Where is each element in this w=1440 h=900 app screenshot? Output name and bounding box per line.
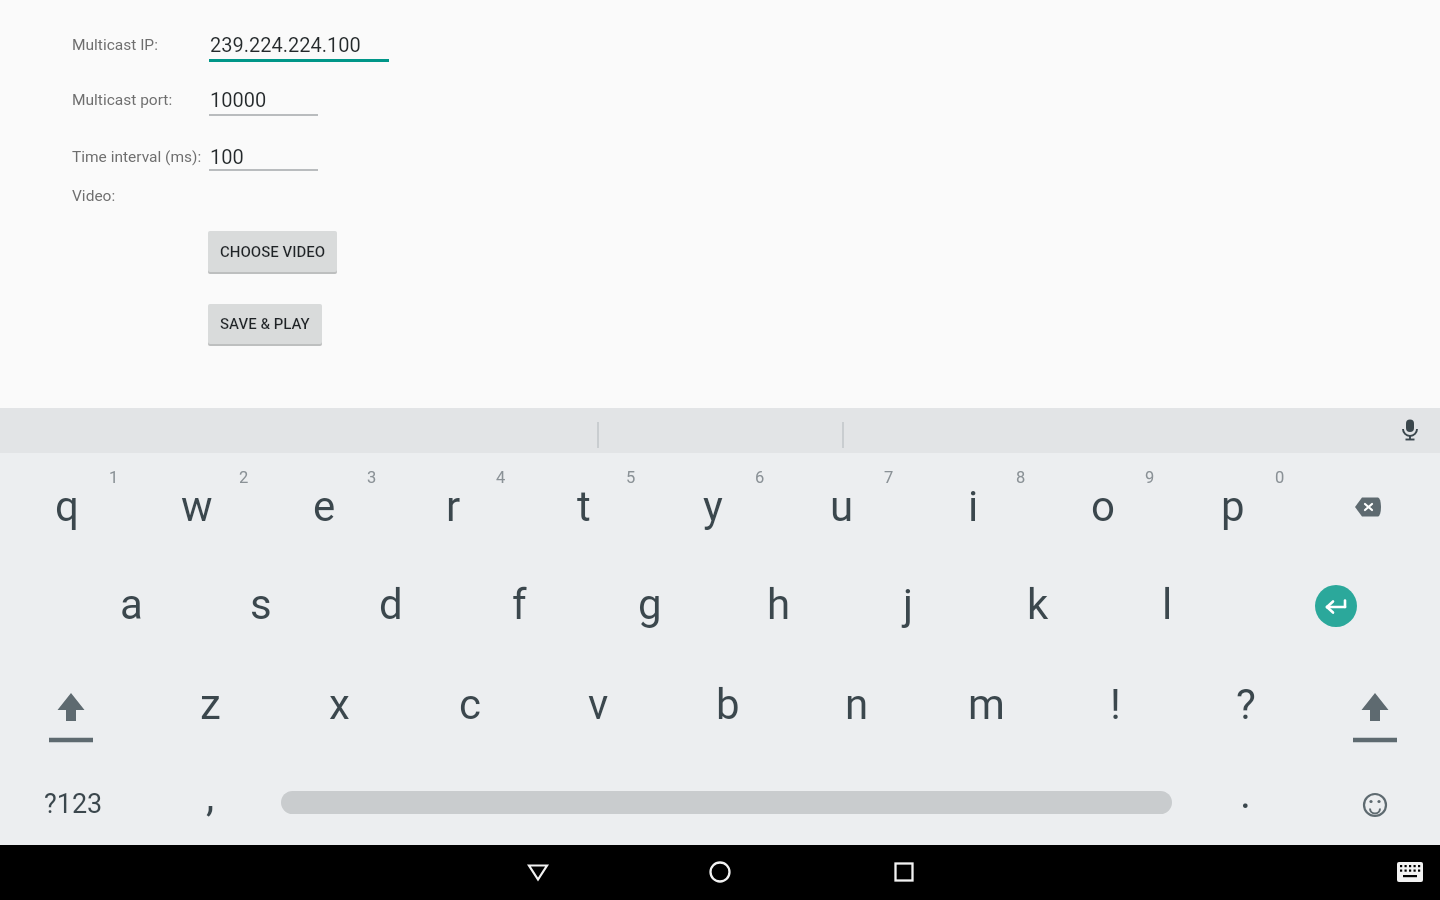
staticText: 8	[1016, 468, 1026, 487]
button[interactable]	[1308, 648, 1440, 746]
staticText: 3	[367, 468, 377, 487]
staticText: 100	[210, 145, 244, 168]
button[interactable]: CHOOSE VIDEO	[208, 231, 337, 272]
button[interactable]: k	[973, 549, 1102, 648]
staticText: CHOOSE VIDEO	[220, 243, 326, 261]
button[interactable]: j	[844, 549, 973, 648]
button[interactable]: d	[326, 549, 455, 648]
button[interactable]: i	[909, 453, 1038, 550]
staticText: ,	[206, 772, 215, 821]
button[interactable]: q	[2, 453, 131, 550]
staticText: 239.224.224.100	[210, 33, 361, 56]
staticText: n	[845, 680, 869, 729]
button[interactable]: l	[1103, 549, 1232, 648]
staticText: t	[577, 482, 591, 531]
button[interactable]: o	[1038, 453, 1167, 550]
staticText: 2	[239, 468, 249, 487]
button[interactable]	[4, 648, 138, 746]
button[interactable]: !	[1051, 648, 1180, 746]
staticText: a	[120, 580, 143, 629]
staticText: h	[767, 580, 791, 629]
button[interactable]: .	[1181, 746, 1310, 845]
staticText: m	[968, 680, 1005, 729]
button[interactable]	[1301, 453, 1435, 550]
button[interactable]	[1308, 746, 1440, 845]
staticText: e	[313, 482, 336, 531]
staticText: Time interval (ms):	[72, 148, 202, 166]
staticText: y	[703, 482, 723, 531]
button[interactable]: t	[519, 453, 648, 550]
button[interactable]: m	[922, 648, 1051, 746]
button[interactable]: h	[714, 549, 843, 648]
button[interactable]: ?	[1181, 648, 1310, 746]
button[interactable]: y	[648, 453, 777, 550]
button[interactable]	[209, 28, 389, 61]
staticText: 0	[1275, 468, 1285, 487]
staticText: k	[1027, 580, 1049, 629]
staticText: g	[638, 580, 662, 629]
button[interactable]: u	[777, 453, 906, 550]
button[interactable]: ,	[146, 746, 275, 845]
staticText: s	[250, 580, 272, 629]
button[interactable]: x	[275, 648, 404, 746]
staticText: Video:	[72, 187, 116, 205]
button[interactable]	[859, 845, 949, 900]
staticText: Multicast IP:	[72, 36, 158, 54]
staticText: 10000	[210, 88, 267, 111]
button[interactable]: s	[196, 549, 325, 648]
staticText: SAVE & PLAY	[220, 315, 310, 333]
staticText: z	[200, 680, 221, 729]
staticText: Multicast port:	[72, 91, 173, 109]
button[interactable]: r	[389, 453, 518, 550]
staticText: b	[716, 680, 740, 729]
staticText: l	[1162, 580, 1173, 629]
button[interactable]	[209, 84, 318, 114]
staticText: 6	[755, 468, 765, 487]
staticText: c	[459, 680, 481, 729]
staticText: x	[329, 680, 350, 729]
staticText: 1	[109, 468, 119, 487]
button[interactable]: p	[1168, 453, 1297, 550]
staticText: w	[181, 482, 213, 531]
button[interactable]: e	[260, 453, 389, 550]
staticText: q	[55, 482, 79, 531]
button[interactable]: b	[663, 648, 792, 746]
button[interactable]: z	[146, 648, 275, 746]
staticText: v	[588, 680, 609, 729]
button[interactable]: SAVE & PLAY	[208, 304, 322, 344]
button[interactable]: ?123	[3, 746, 143, 845]
staticText: !	[1110, 680, 1121, 729]
button[interactable]: w	[132, 453, 261, 550]
button[interactable]	[1386, 408, 1434, 451]
button[interactable]	[493, 845, 583, 900]
button[interactable]: c	[405, 648, 534, 746]
button[interactable]: n	[792, 648, 921, 746]
button[interactable]	[675, 845, 765, 900]
staticText: o	[1091, 482, 1115, 531]
button[interactable]	[1269, 549, 1403, 648]
staticText: i	[968, 482, 979, 531]
staticText: r	[446, 482, 461, 531]
staticText: 7	[884, 468, 894, 487]
staticText: 5	[626, 468, 636, 487]
button[interactable]	[209, 140, 318, 168]
button[interactable]: g	[585, 549, 714, 648]
staticText: ?	[1236, 680, 1256, 729]
staticText: .	[1240, 769, 1252, 818]
button[interactable]	[1380, 845, 1440, 900]
staticText: u	[830, 482, 854, 531]
button[interactable]: a	[67, 549, 196, 648]
staticText: j	[903, 580, 914, 629]
staticText: p	[1221, 482, 1245, 531]
button[interactable]: f	[455, 549, 584, 648]
staticText: d	[379, 580, 403, 629]
button[interactable]: v	[534, 648, 663, 746]
staticText: 9	[1145, 468, 1155, 487]
staticText: f	[512, 580, 527, 629]
staticText: 4	[496, 468, 506, 487]
staticText: ?123	[44, 788, 103, 820]
